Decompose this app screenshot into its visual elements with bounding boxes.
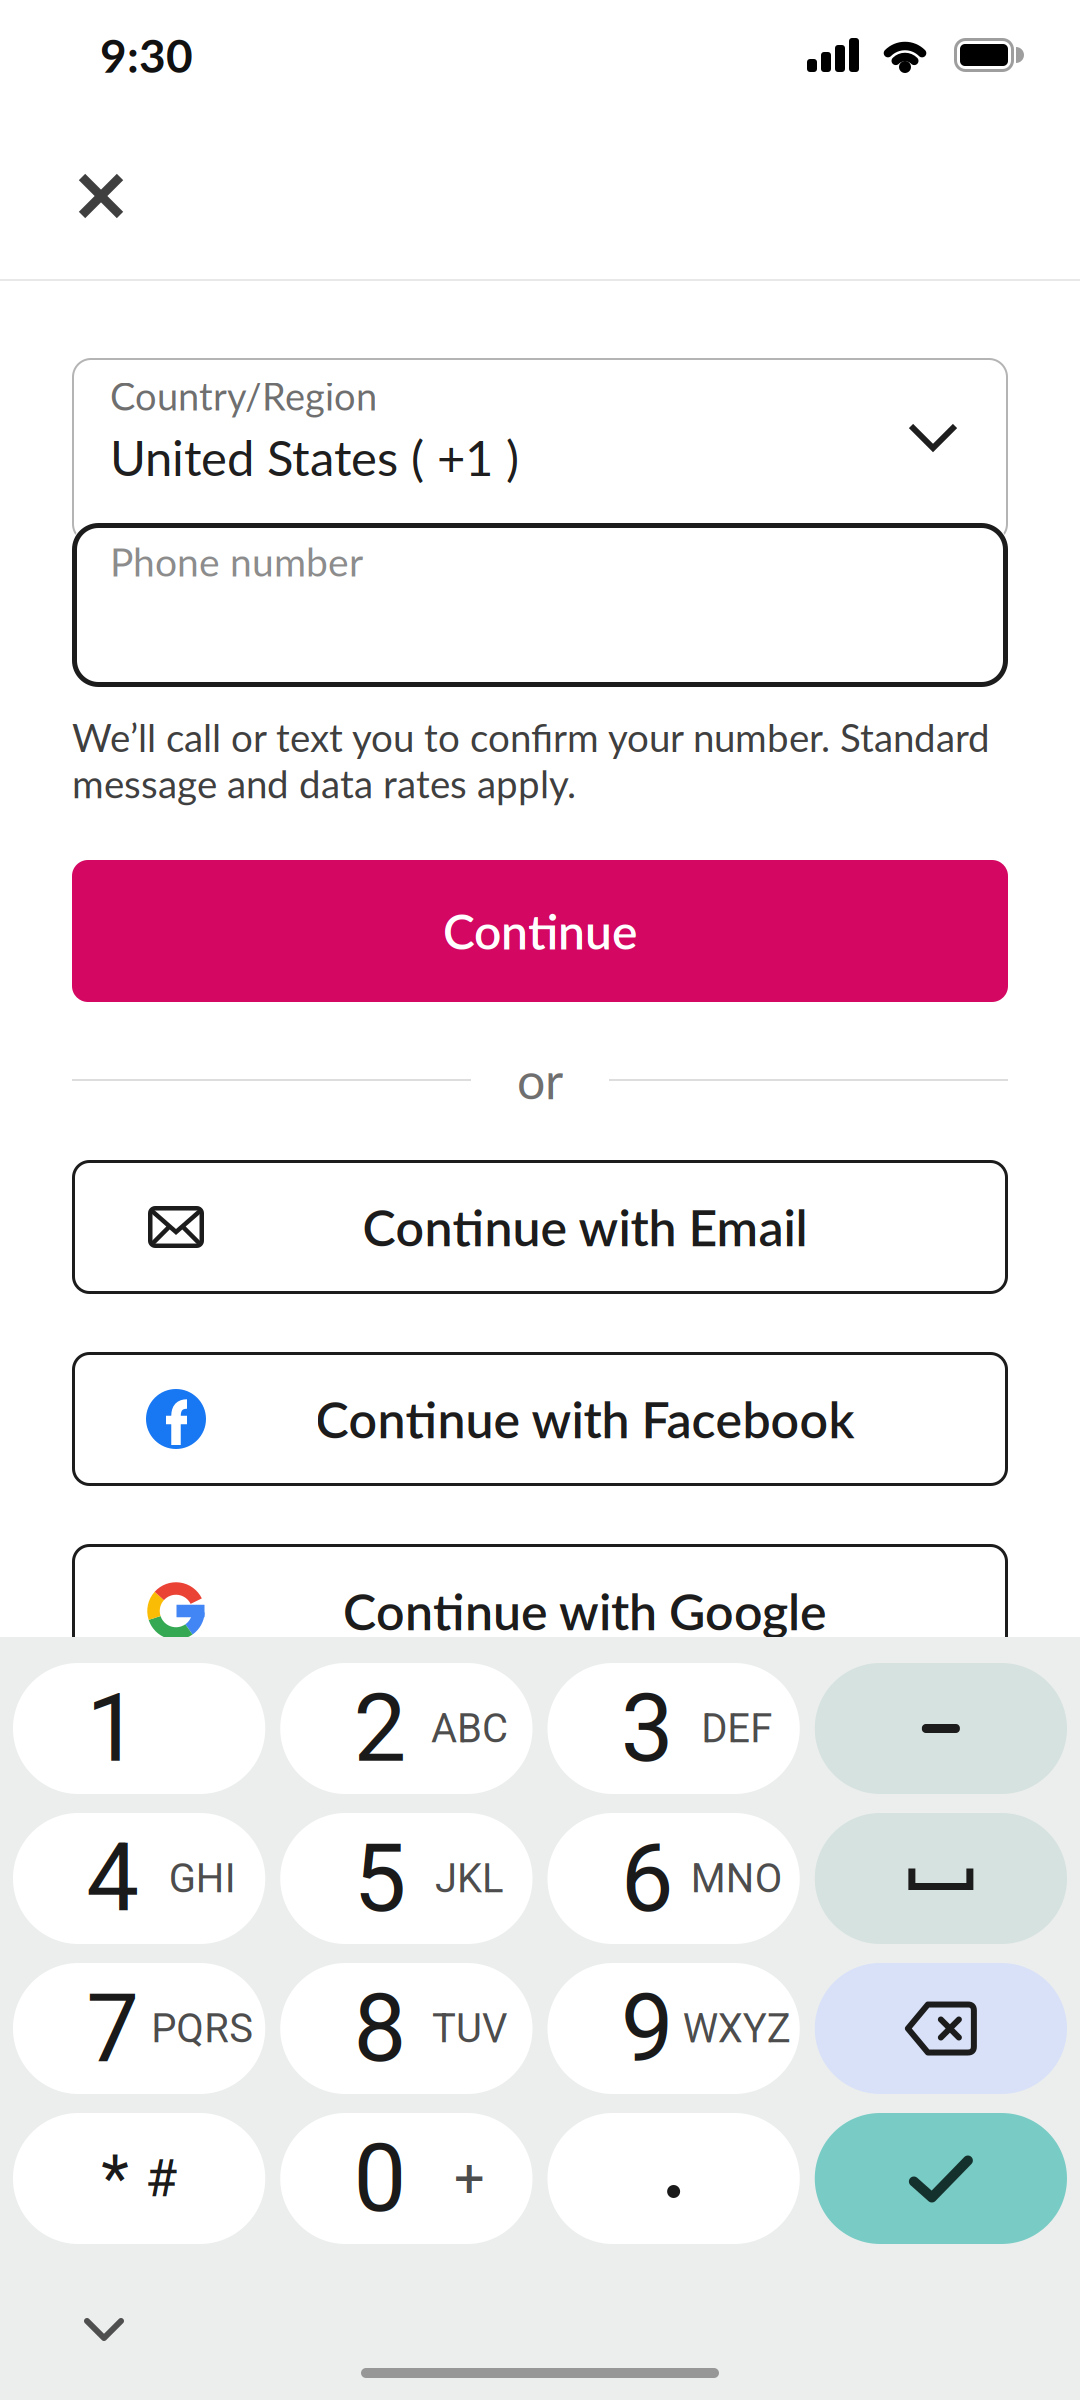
button[interactable]: 2 bbox=[280, 1663, 532, 1794]
staticText: ABC bbox=[431, 1705, 508, 1752]
staticText: Continue bbox=[443, 902, 637, 960]
button[interactable]: Country/Region bbox=[72, 358, 1008, 543]
staticText: 9:30 bbox=[100, 27, 193, 83]
button[interactable]: Dash bbox=[815, 1663, 1067, 1794]
button[interactable]: 9 bbox=[547, 1963, 800, 2094]
button[interactable]: Continue with Facebook bbox=[72, 1352, 1008, 1486]
staticText: or bbox=[517, 1050, 563, 1110]
staticText: WXYZ bbox=[683, 2005, 791, 2052]
button[interactable]: Close bbox=[80, 175, 122, 217]
button[interactable]: Phone number bbox=[72, 523, 1008, 687]
staticText: 5 bbox=[353, 1823, 406, 1934]
staticText: JKL bbox=[435, 1855, 504, 1902]
button[interactable]: 3 bbox=[547, 1663, 800, 1794]
staticText: TUV bbox=[432, 2005, 507, 2052]
staticText: 0 bbox=[353, 2123, 406, 2234]
button[interactable]: 5 bbox=[280, 1813, 532, 1944]
staticText: Continue with Email bbox=[362, 1197, 807, 1257]
staticText: United States ( +1 ) bbox=[110, 428, 519, 486]
staticText: DEF bbox=[701, 1705, 772, 1752]
button[interactable]: 7 bbox=[13, 1963, 265, 2094]
staticText: 1 bbox=[86, 1673, 139, 1784]
staticText: MNO bbox=[691, 1855, 783, 1902]
staticText: We’ll call or text you to confirm your n… bbox=[72, 714, 990, 806]
button[interactable]: Space bbox=[815, 1813, 1067, 1944]
button[interactable]: 0 bbox=[280, 2113, 532, 2244]
staticText: 8 bbox=[353, 1973, 406, 2084]
staticText: 9 bbox=[621, 1973, 674, 2084]
button[interactable]: Decimal point bbox=[547, 2113, 800, 2244]
staticText: 6 bbox=[621, 1823, 674, 1934]
staticText: 3 bbox=[621, 1673, 674, 1784]
staticText: Continue with Facebook bbox=[315, 1389, 854, 1449]
button[interactable]: 1 bbox=[13, 1663, 265, 1794]
staticText: Phone number bbox=[110, 538, 363, 585]
staticText: 4 bbox=[86, 1823, 139, 1934]
staticText: + bbox=[454, 2147, 485, 2210]
button[interactable]: 4 bbox=[13, 1813, 265, 1944]
button[interactable]: Continue with Google bbox=[72, 1544, 1008, 1678]
staticText: # bbox=[145, 2148, 177, 2209]
staticText: Country/Region bbox=[110, 373, 377, 419]
button[interactable]: Continue bbox=[72, 860, 1008, 1002]
staticText: * bbox=[101, 2141, 129, 2216]
button[interactable]: 6 bbox=[547, 1813, 800, 1944]
staticText: Continue with Google bbox=[343, 1581, 827, 1641]
button[interactable]: 8 bbox=[280, 1963, 532, 2094]
button[interactable]: Hide keyboard bbox=[84, 2318, 124, 2342]
button[interactable]: Delete bbox=[815, 1963, 1067, 2094]
staticText: 7 bbox=[86, 1973, 139, 2084]
button[interactable]: Continue with Email bbox=[72, 1160, 1008, 1294]
staticText: PQRS bbox=[151, 2005, 253, 2052]
staticText: 2 bbox=[353, 1673, 406, 1784]
staticText: GHI bbox=[169, 1855, 236, 1902]
button[interactable]: Done bbox=[815, 2113, 1067, 2244]
button[interactable]: * bbox=[13, 2113, 265, 2244]
